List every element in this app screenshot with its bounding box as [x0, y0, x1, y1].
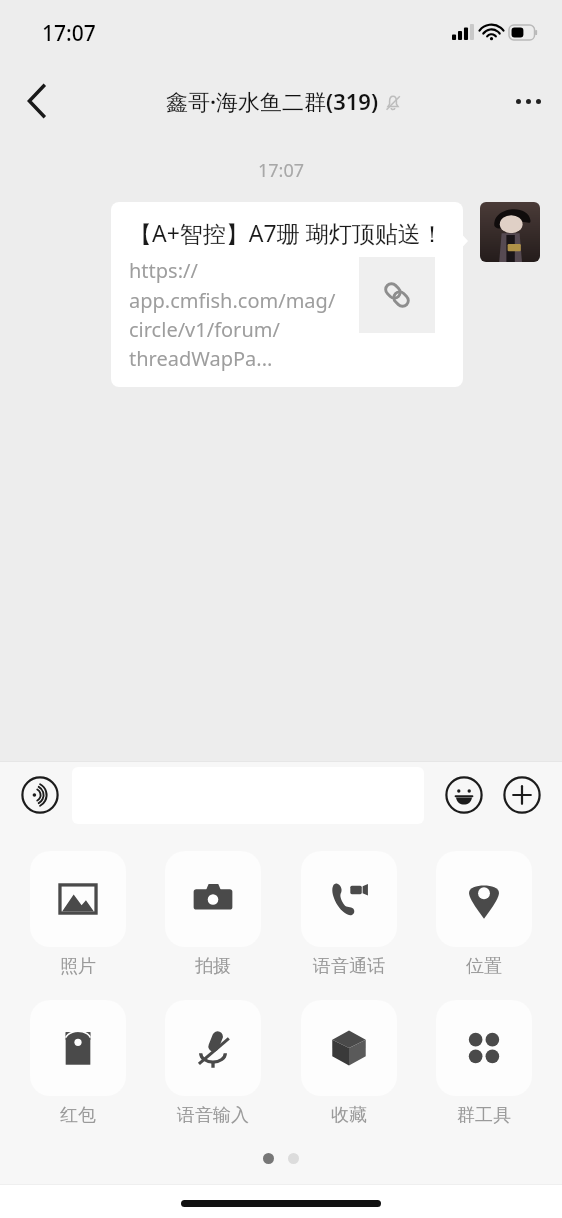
staticText: 语音通话: [313, 955, 385, 978]
staticText: 【A+智控】A7珊 瑚灯顶贴送！: [129, 217, 444, 248]
staticText: 17:07: [0, 158, 562, 183]
staticText: 17:07: [42, 19, 96, 48]
button[interactable]: Back: [8, 73, 64, 129]
button[interactable]: 群工具: [426, 1000, 542, 1127]
button[interactable]: More options: [500, 73, 556, 129]
staticText: 位置: [466, 955, 502, 978]
button[interactable]: 照片: [20, 851, 136, 978]
button[interactable]: Voice message: [14, 769, 66, 821]
button[interactable]: Avatar: [480, 202, 540, 262]
staticText: 群工具: [457, 1104, 511, 1127]
button[interactable]: 红包: [20, 1000, 136, 1127]
staticText: 鑫哥·海水鱼二群(319): [166, 86, 379, 116]
staticText: 拍摄: [195, 955, 231, 978]
button[interactable]: 语音输入: [155, 1000, 271, 1127]
staticText: 红包: [60, 1104, 96, 1127]
button[interactable]: 语音通话: [291, 851, 407, 978]
button[interactable]: 拍摄: [155, 851, 271, 978]
button[interactable]: More functions: [496, 769, 548, 821]
staticText: 语音输入: [177, 1104, 249, 1127]
staticText: 收藏: [331, 1104, 367, 1127]
button[interactable]: Emoji: [438, 769, 490, 821]
staticText: https://app.cmfish.com/mag/circle/v1/for…: [129, 257, 347, 372]
button[interactable]: 位置: [426, 851, 542, 978]
staticText: 照片: [60, 955, 96, 978]
button[interactable]: 【A+智控】A7珊 瑚灯顶贴送！: [111, 202, 463, 387]
button[interactable]: 收藏: [291, 1000, 407, 1127]
